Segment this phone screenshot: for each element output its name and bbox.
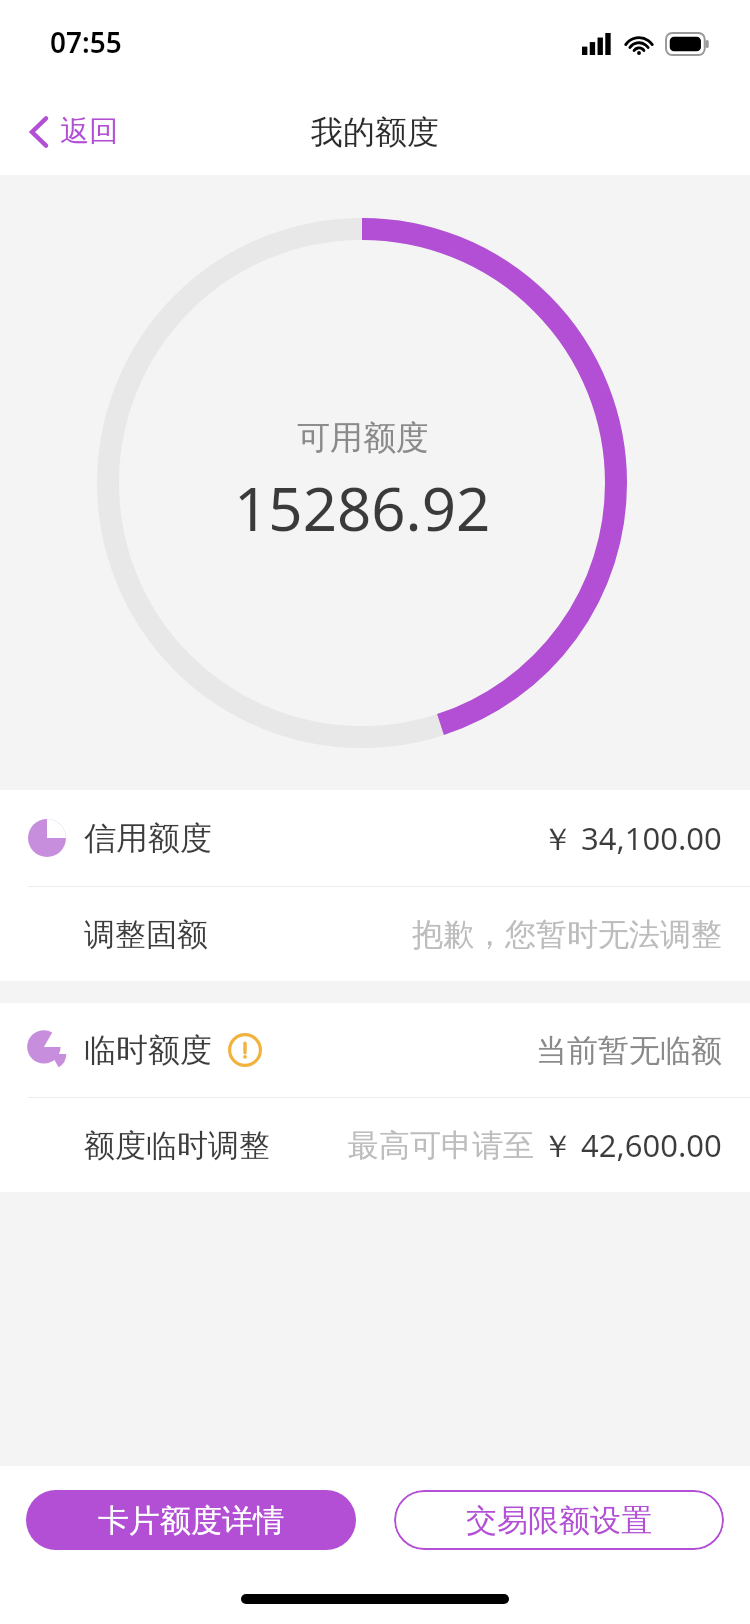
staticText: 返回: [60, 113, 118, 150]
button[interactable]: 额度临时调整: [0, 1098, 750, 1192]
staticText: ￥ 34,100.00: [542, 817, 722, 859]
staticText: 临时额度: [84, 1030, 212, 1070]
button[interactable]: 信用额度: [0, 790, 750, 886]
staticText: 调整固额: [84, 915, 208, 954]
staticText: 07:55: [50, 23, 122, 61]
staticText: 额度临时调整: [84, 1126, 270, 1165]
staticText: 卡片额度详情: [98, 1501, 284, 1540]
button[interactable]: 临时额度: [0, 1003, 750, 1097]
staticText: 抱歉，您暂时无法调整: [412, 915, 722, 954]
staticText: 信用额度: [84, 818, 212, 858]
staticText: 最高可申请至: [348, 1126, 534, 1165]
staticText: ￥ 42,600.00: [542, 1124, 722, 1166]
staticText: 交易限额设置: [466, 1501, 652, 1540]
button[interactable]: 调整固额: [0, 887, 750, 981]
staticText: 我的额度: [311, 112, 439, 152]
button[interactable]: 交易限额设置: [394, 1490, 724, 1550]
button[interactable]: 卡片额度详情: [26, 1490, 356, 1550]
button[interactable]: 返回: [0, 105, 134, 158]
staticText: 15286.92: [234, 467, 491, 549]
button[interactable]: 提示: [228, 1033, 262, 1067]
staticText: 可用额度: [297, 417, 429, 459]
staticText: 当前暂无临额: [536, 1031, 722, 1070]
